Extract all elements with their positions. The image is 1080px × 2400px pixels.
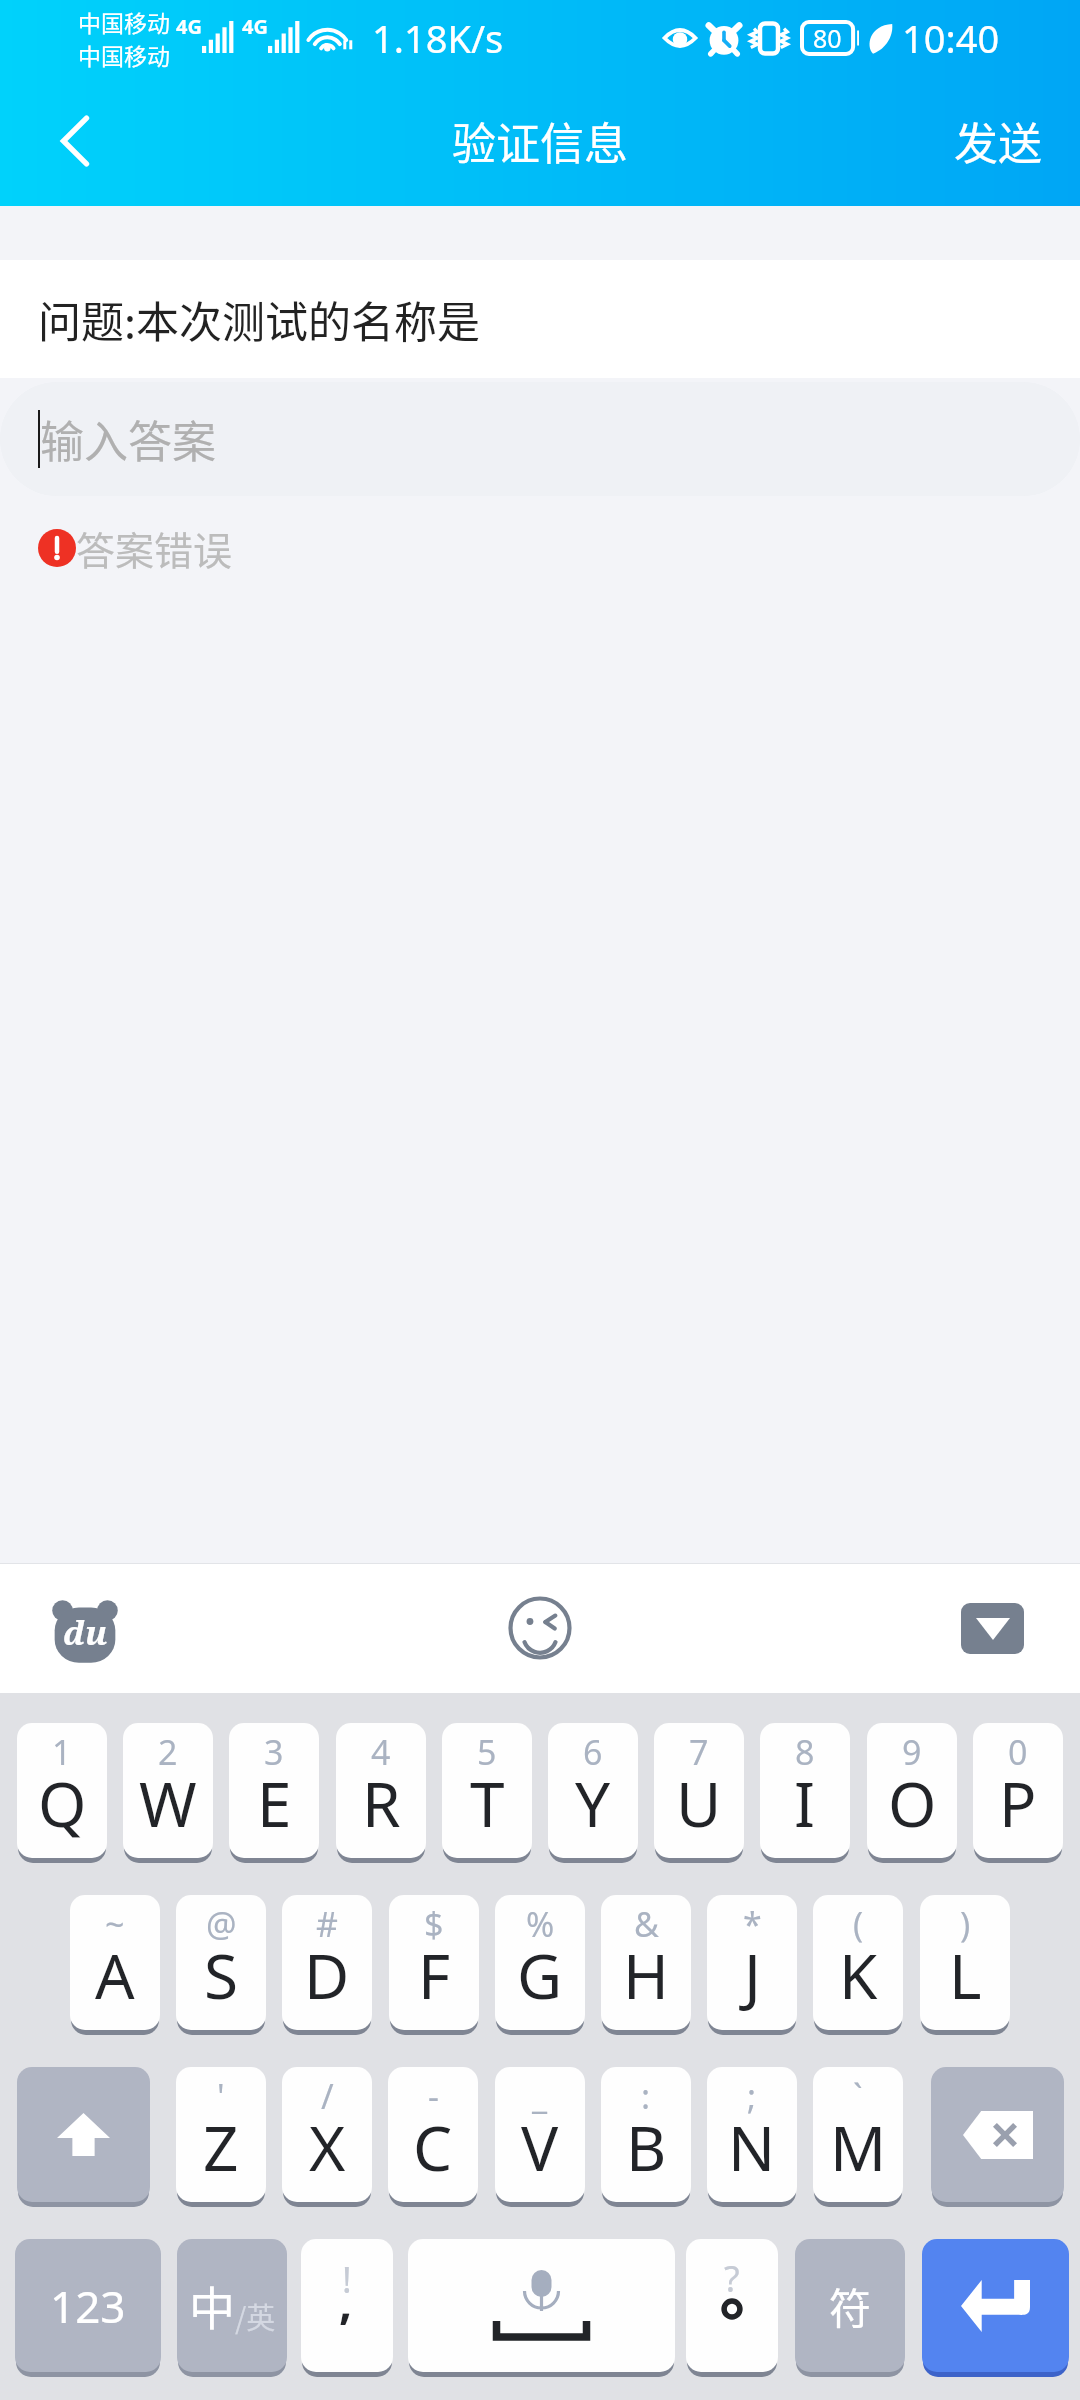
staticText: ' [217,2073,225,2119]
staticText: R [362,1761,401,1845]
staticText: 4G [242,13,268,40]
button[interactable]: 6 [548,1723,638,1858]
staticText: 6 [583,1729,603,1775]
button[interactable]: & [601,1895,691,2030]
staticText: 1 [52,1729,72,1775]
button[interactable]: Shift [17,2067,150,2202]
button[interactable]: 1 [17,1723,107,1858]
button[interactable]: 中 [177,2239,287,2372]
button[interactable]: 符 [795,2239,905,2372]
button[interactable]: Period [686,2239,778,2372]
staticText: U [676,1761,722,1845]
button[interactable]: Emoji [485,1573,595,1683]
staticText: S [204,1933,239,2017]
button[interactable]: ` [813,2067,903,2202]
staticText: 答案错误 [76,520,233,576]
button[interactable]: 4 [336,1723,426,1858]
button[interactable]: % [495,1895,585,2030]
button[interactable]: $ [389,1895,479,2030]
button[interactable]: 3 [229,1723,319,1858]
button[interactable]: 9 [867,1723,957,1858]
staticText: 中国移动 [78,5,170,38]
staticText: & [634,1901,659,1947]
staticText: 123 [50,2276,126,2336]
staticText: F [418,1933,451,2017]
staticText: N [728,2105,776,2189]
staticText: 输入答案 [40,407,216,471]
staticText: M [830,2105,887,2189]
staticText: ( [853,1901,864,1947]
staticText: ? [724,2254,740,2303]
button[interactable]: 5 [442,1723,532,1858]
button[interactable]: 发送 [916,76,1080,206]
staticText: X [309,2105,346,2189]
staticText: K [839,1933,878,2017]
staticText: % [526,1901,555,1947]
staticText: _ [532,2073,548,2119]
staticText: Z [203,2105,239,2189]
staticText: H [623,1933,669,2017]
staticText: , [339,2270,353,2333]
button[interactable]: * [707,1895,797,2030]
staticText: I [794,1761,816,1845]
staticText: 8 [795,1729,815,1775]
staticText: $ [424,1901,444,1947]
button[interactable]: _ [495,2067,585,2202]
button[interactable]: ( [813,1895,903,2030]
button[interactable]: 输入答案 [0,382,1080,496]
staticText: ` [853,2073,863,2119]
button[interactable]: Comma [301,2239,393,2372]
staticText: 中国移动 [78,38,170,71]
staticText: 4G [176,13,202,40]
button[interactable]: 7 [654,1723,744,1858]
staticText: 2 [158,1729,178,1775]
staticText: P [999,1761,1037,1845]
staticText: /英 [235,2295,276,2337]
button[interactable]: @ [176,1895,266,2030]
staticText: 0 [1008,1729,1028,1775]
staticText: 3 [264,1729,284,1775]
staticText: L [949,1933,982,2017]
button[interactable]: 8 [760,1723,850,1858]
button[interactable]: : [601,2067,691,2202]
staticText: ; [747,2073,757,2119]
staticText: E [257,1761,292,1845]
button[interactable]: - [388,2067,478,2202]
staticText: 5 [477,1729,497,1775]
staticText: 10:40 [902,12,1000,64]
staticText: J [744,1933,761,2017]
staticText: @ [206,1901,237,1947]
staticText: 9 [902,1729,922,1775]
staticText: 1.18K/s [372,12,504,64]
staticText: G [517,1933,563,2017]
staticText: / [321,2073,334,2119]
button[interactable]: 2 [123,1723,213,1858]
button[interactable]: Back [0,76,150,206]
staticText: 中 [189,2272,235,2339]
button[interactable]: / [282,2067,372,2202]
staticText: 验证信息 [452,109,628,173]
button[interactable]: Hide keyboard [961,1603,1024,1654]
staticText: * [743,1901,762,1947]
staticText: D [304,1933,350,2017]
staticText: T [470,1761,505,1845]
staticText: 发送 [954,109,1042,173]
button[interactable]: # [282,1895,372,2030]
staticText: A [95,1933,135,2017]
button[interactable]: 123 [15,2239,161,2372]
button[interactable]: Space [408,2239,675,2372]
staticText: 4 [371,1729,391,1775]
staticText: C [413,2105,453,2189]
button[interactable]: ; [707,2067,797,2202]
button[interactable]: ' [176,2067,266,2202]
button[interactable]: 0 [973,1723,1063,1858]
button[interactable]: Enter [922,2239,1069,2372]
button[interactable]: Backspace [931,2067,1064,2202]
staticText: ! [342,2255,352,2304]
staticText: du [63,1610,108,1655]
button[interactable]: ) [920,1895,1010,2030]
staticText: 问题:本次测试的名称是 [38,288,480,350]
button[interactable]: ~ [70,1895,160,2030]
staticText: 7 [689,1729,709,1775]
button[interactable]: Baidu input [30,1573,140,1683]
